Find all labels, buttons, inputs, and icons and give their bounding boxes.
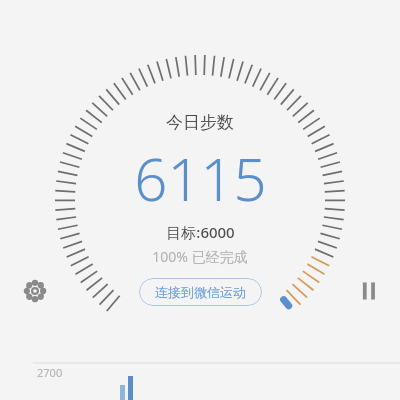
staticText: 目标:6000 [166,222,235,242]
staticText: 连接到微信运动 [155,284,246,300]
staticText: 2700 [37,365,63,380]
button[interactable]: Pause [352,274,386,308]
staticText: 6115 [134,139,267,218]
staticText: 100% 已经完成 [152,247,248,266]
button[interactable]: Settings [18,274,52,308]
staticText: 今日步数 [166,112,234,133]
button[interactable]: 连接到微信运动 [139,278,262,306]
